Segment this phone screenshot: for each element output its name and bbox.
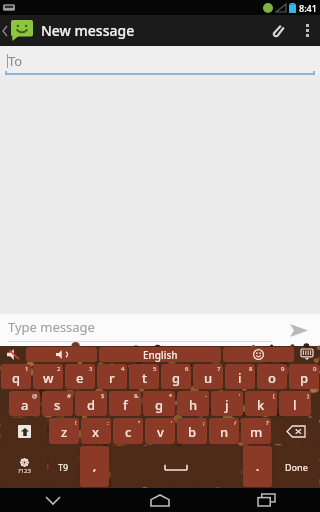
staticText: 0 (313, 365, 317, 373)
staticText: d (87, 396, 96, 414)
staticText: 5 (153, 365, 157, 373)
button[interactable]: $ (75, 391, 107, 416)
staticText: : (107, 419, 109, 427)
staticText: 7 (217, 365, 221, 373)
staticText: b (188, 423, 197, 441)
staticText: ' (171, 419, 173, 427)
button[interactable]: Mute (0, 346, 26, 363)
button[interactable]: . (243, 446, 272, 487)
button[interactable]: Hide keyboard (294, 346, 320, 363)
staticText: m (250, 423, 263, 441)
button[interactable]: T9 (49, 446, 78, 487)
staticText: e (76, 369, 84, 387)
staticText: p (300, 369, 309, 387)
staticText: * (169, 392, 173, 400)
staticText: English (143, 348, 178, 362)
button[interactable] (223, 347, 294, 362)
button[interactable] (26, 347, 97, 362)
button[interactable]: English (99, 347, 221, 362)
staticText: n (220, 423, 229, 441)
button[interactable]: 2 (33, 364, 63, 389)
button[interactable]: 3 (65, 364, 95, 389)
staticText: Done (285, 461, 308, 473)
staticText: g (172, 369, 181, 387)
button[interactable]: Attach (260, 15, 294, 46)
staticText: # (67, 392, 71, 400)
button[interactable]: / (209, 418, 239, 444)
button[interactable]: Backspace (273, 418, 319, 444)
button[interactable]: Shift (1, 418, 47, 444)
staticText: g (155, 396, 164, 414)
button[interactable]: - (177, 391, 209, 416)
button[interactable]: ' (145, 418, 175, 444)
staticText: $ (101, 392, 105, 400)
staticText: r (109, 369, 115, 387)
staticText: t (142, 369, 147, 387)
button[interactable]: ! (49, 418, 79, 444)
staticText: 2 (57, 365, 61, 373)
button[interactable] (0, 15, 37, 46)
staticText: j (225, 396, 229, 414)
staticText: 4 (121, 365, 125, 373)
staticText: s (54, 396, 61, 414)
staticText: 9 (281, 365, 285, 373)
staticText: " (138, 419, 141, 427)
staticText: ( (273, 392, 275, 400)
button[interactable]: * (143, 391, 175, 416)
staticText: ?123 (18, 467, 31, 475)
staticText: 8:41 (299, 2, 317, 14)
button[interactable]: Done (274, 446, 319, 487)
button[interactable]: : (81, 418, 111, 444)
button[interactable]: More options (294, 15, 320, 46)
button[interactable]: ' (211, 391, 243, 416)
button[interactable]: Settings and symbols (1, 446, 47, 487)
button[interactable]: Type message (8, 314, 278, 346)
staticText: New message (41, 21, 135, 40)
button[interactable]: @ (9, 391, 40, 416)
staticText: 8 (249, 365, 253, 373)
button[interactable]: & (109, 391, 141, 416)
staticText: x (92, 423, 100, 441)
staticText: q (12, 369, 21, 387)
button[interactable]: 4 (97, 364, 127, 389)
staticText: / (234, 419, 237, 427)
staticText: ) (307, 392, 309, 400)
button[interactable]: Home (106, 488, 213, 512)
button[interactable]: To (0, 46, 320, 75)
button[interactable]: ( (245, 391, 277, 416)
button[interactable]: 6 (161, 364, 191, 389)
button[interactable]: ; (177, 418, 207, 444)
button[interactable]: ) (279, 391, 311, 416)
staticText: To (8, 52, 23, 70)
button[interactable]: 0 (289, 364, 319, 389)
button[interactable]: Send (278, 314, 320, 346)
staticText: a (21, 396, 29, 414)
button[interactable]: 7 (193, 364, 223, 389)
staticText: w (43, 369, 54, 387)
staticText: . (256, 459, 260, 474)
staticText: Type message (8, 318, 95, 336)
button[interactable]: # (42, 391, 73, 416)
button[interactable]: Back (0, 488, 106, 512)
button[interactable]: " (113, 418, 143, 444)
staticText: i (238, 369, 242, 387)
button[interactable]: Space (111, 446, 241, 487)
staticText: k (257, 396, 265, 414)
staticText: , (93, 459, 97, 474)
staticText: f (123, 396, 128, 414)
button[interactable]: 5 (129, 364, 159, 389)
staticText: ' (239, 392, 241, 400)
button[interactable]: ? (241, 418, 271, 444)
button[interactable]: Recent apps (213, 488, 320, 512)
button[interactable]: 1 (1, 364, 31, 389)
button[interactable]: 9 (257, 364, 287, 389)
button[interactable]: 8 (225, 364, 255, 389)
staticText: 6 (185, 365, 189, 373)
button[interactable]: , (80, 446, 109, 487)
staticText: T9 (58, 461, 69, 473)
staticText: l (293, 396, 297, 414)
staticText: h (189, 396, 198, 414)
staticText: ! (75, 419, 77, 427)
staticText: v (157, 423, 164, 441)
staticText: z (61, 423, 68, 441)
